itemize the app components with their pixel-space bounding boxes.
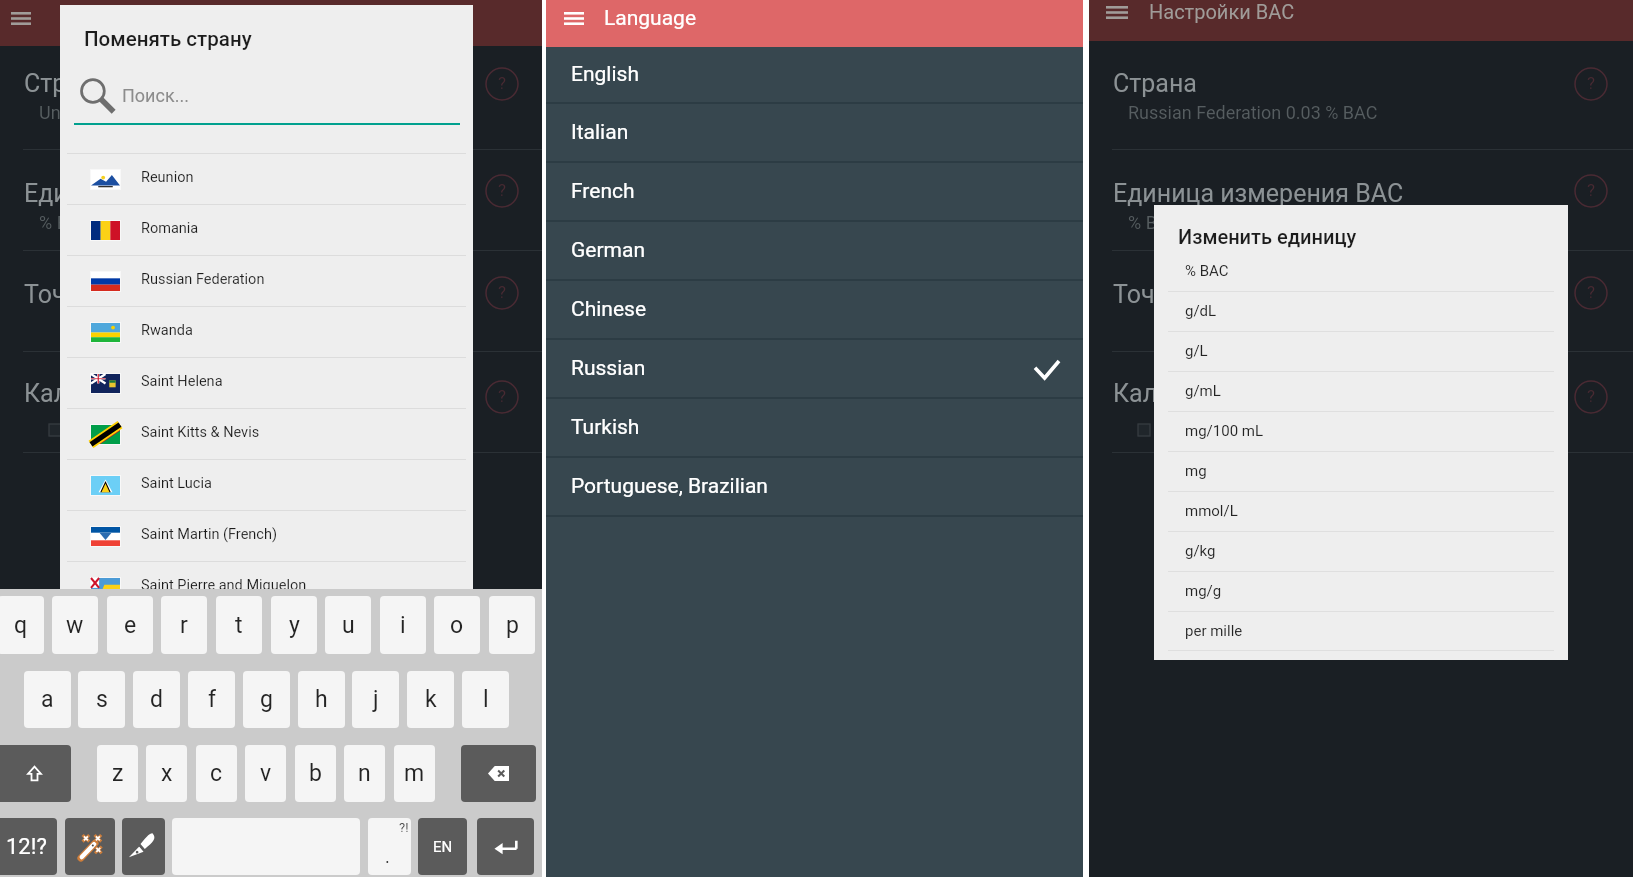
button[interactable]: Open navigation menu: [1098, 0, 1136, 28]
staticText: ?!: [399, 820, 409, 835]
button[interactable]: French: [546, 163, 1083, 222]
button[interactable]: per mille: [1154, 612, 1568, 651]
button[interactable]: t: [216, 596, 262, 654]
button[interactable]: Единица измерения BAC: [1089, 150, 1633, 251]
button[interactable]: b: [295, 745, 336, 802]
button[interactable]: Chinese: [546, 281, 1083, 340]
button[interactable]: 12!?: [0, 818, 57, 875]
button[interactable]: Калибровка: [0, 352, 542, 453]
button[interactable]: u: [325, 596, 371, 654]
staticText: f: [208, 686, 216, 713]
button[interactable]: Saint Helena: [60, 358, 473, 409]
staticText: n: [358, 760, 371, 787]
button[interactable]: Italian: [546, 104, 1083, 163]
button[interactable]: x: [146, 745, 187, 802]
button[interactable]: Rwanda: [60, 307, 473, 358]
staticText: ?: [498, 73, 507, 93]
staticText: Поменять страну: [84, 27, 252, 51]
staticText: Russian Federation: [141, 271, 265, 288]
button[interactable]: Калибровка: [1089, 352, 1633, 453]
button[interactable]: f: [188, 671, 235, 728]
button[interactable]: g/kg: [1154, 532, 1568, 572]
staticText: u: [342, 612, 355, 639]
staticText: EN: [433, 838, 453, 856]
staticText: d: [150, 686, 163, 713]
button[interactable]: Period: [368, 818, 411, 875]
button[interactable]: g/mL: [1154, 372, 1568, 412]
button[interactable]: m: [394, 745, 435, 802]
button[interactable]: h: [298, 671, 345, 728]
button[interactable]: p: [489, 596, 535, 654]
staticText: per mille: [1185, 622, 1243, 640]
button[interactable]: z: [97, 745, 138, 802]
staticText: ?: [1587, 180, 1596, 200]
button[interactable]: i: [380, 596, 426, 654]
button[interactable]: Backspace: [461, 745, 536, 802]
button[interactable]: y: [271, 596, 317, 654]
button[interactable]: n: [344, 745, 385, 802]
button[interactable]: Страна: [0, 47, 542, 150]
button[interactable]: Точность: [1089, 251, 1633, 352]
button[interactable]: Единица измерения BAC: [0, 150, 542, 251]
staticText: l: [483, 686, 489, 713]
staticText: y: [289, 612, 300, 639]
button[interactable]: j: [352, 671, 399, 728]
button[interactable]: mmol/L: [1154, 492, 1568, 532]
button[interactable]: Portuguese, Brazilian: [546, 458, 1083, 517]
staticText: Калибровка: [1113, 379, 1255, 408]
button[interactable]: Reunion: [60, 154, 473, 205]
staticText: mg: [1185, 462, 1207, 480]
staticText: Изменить единицу: [1178, 225, 1357, 248]
staticText: Romania: [141, 220, 199, 237]
button[interactable]: q: [0, 596, 44, 654]
button[interactable]: Saint Kitts & Nevis: [60, 409, 473, 460]
button[interactable]: s: [78, 671, 125, 728]
button[interactable]: Turkish: [546, 399, 1083, 458]
button[interactable]: o: [434, 596, 480, 654]
button[interactable]: Страна: [1089, 47, 1633, 150]
button[interactable]: Romania: [60, 205, 473, 256]
button[interactable]: g/L: [1154, 332, 1568, 372]
staticText: x: [161, 760, 173, 787]
staticText: German: [571, 238, 645, 263]
button[interactable]: Handwriting: [122, 818, 165, 875]
staticText: Saint Martin (French): [141, 526, 277, 543]
button[interactable]: Saint Lucia: [60, 460, 473, 511]
button[interactable]: Russian Federation: [60, 256, 473, 307]
button[interactable]: k: [407, 671, 454, 728]
button[interactable]: Shift: [0, 745, 71, 802]
button[interactable]: EN: [418, 818, 467, 875]
button[interactable]: Open navigation menu: [3, 2, 39, 34]
button[interactable]: w: [52, 596, 98, 654]
button[interactable]: Точность: [0, 251, 542, 352]
button[interactable]: r: [161, 596, 207, 654]
staticText: Portuguese, Brazilian: [571, 474, 768, 499]
button[interactable]: mg/100 mL: [1154, 412, 1568, 452]
button[interactable]: e: [107, 596, 153, 654]
staticText: b: [309, 760, 322, 787]
staticText: % BAC: [1128, 212, 1181, 233]
button[interactable]: mg: [1154, 452, 1568, 492]
button[interactable]: German: [546, 222, 1083, 281]
staticText: ?: [498, 282, 507, 302]
button[interactable]: d: [133, 671, 180, 728]
button[interactable]: English: [546, 47, 1083, 104]
staticText: Saint Lucia: [141, 475, 212, 492]
staticText: Единица измерения BAC: [24, 179, 315, 208]
button[interactable]: c: [196, 745, 237, 802]
button[interactable]: Enter: [477, 818, 534, 875]
button[interactable]: Open navigation menu: [556, 2, 592, 34]
staticText: Страна: [1113, 69, 1197, 98]
button[interactable]: g/dL: [1154, 292, 1568, 332]
button[interactable]: g: [243, 671, 290, 728]
button[interactable]: Russian: [546, 340, 1083, 399]
button[interactable]: a: [24, 671, 71, 728]
button[interactable]: mg/g: [1154, 572, 1568, 612]
button[interactable]: v: [245, 745, 286, 802]
button[interactable]: Saint Martin (French): [60, 511, 473, 562]
button[interactable]: Emoji: [65, 818, 115, 875]
button[interactable]: % BAC: [1154, 252, 1568, 292]
button[interactable]: l: [462, 671, 509, 728]
button[interactable]: Saint Pierre and Miquelon: [60, 562, 473, 613]
